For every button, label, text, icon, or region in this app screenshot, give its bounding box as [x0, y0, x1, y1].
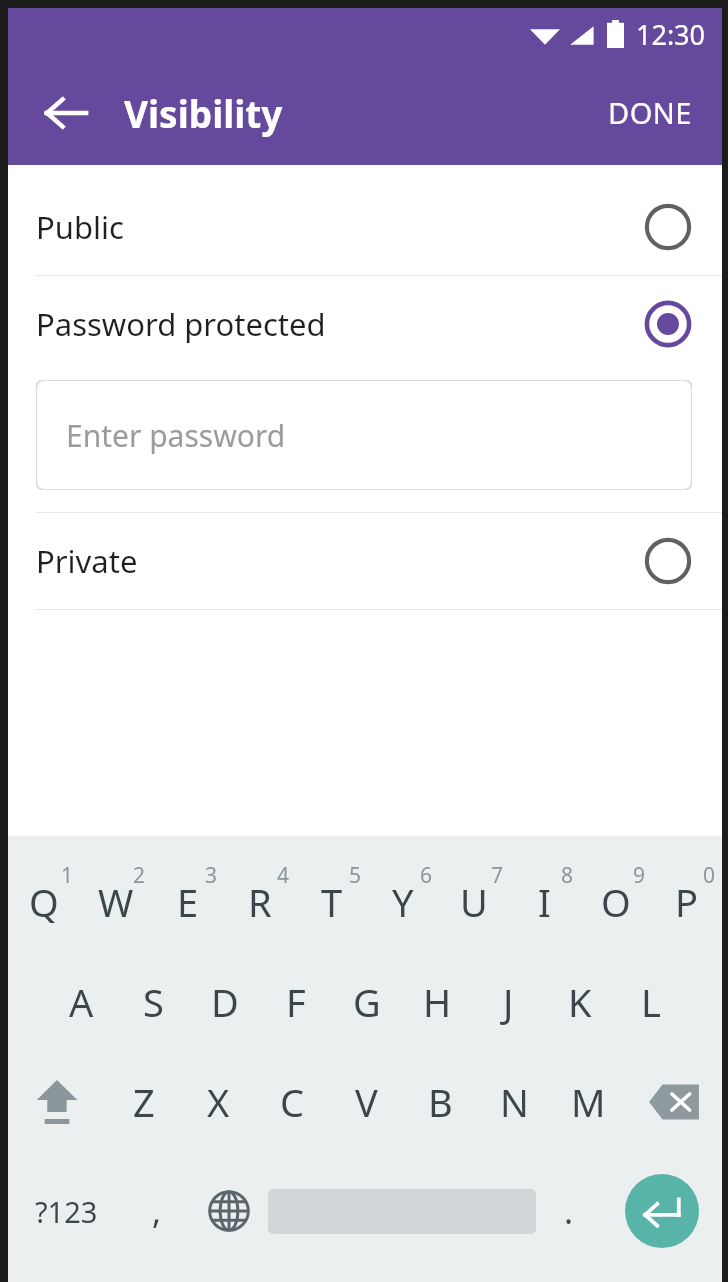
staticText: Y: [392, 876, 414, 928]
button[interactable]: E: [152, 852, 224, 952]
staticText: T: [321, 876, 343, 928]
button[interactable]: Q: [8, 852, 80, 952]
button[interactable]: Public: [8, 179, 722, 275]
button[interactable]: L: [615, 952, 686, 1052]
button[interactable]: B: [403, 1052, 477, 1152]
button[interactable]: Y: [367, 852, 438, 952]
button[interactable]: S: [117, 952, 189, 1052]
staticText: N: [500, 1076, 529, 1128]
staticText: B: [428, 1076, 453, 1128]
staticText: Q: [29, 876, 59, 928]
staticText: 12:30: [636, 16, 706, 53]
staticText: Enter password: [66, 415, 286, 456]
button[interactable]: T: [296, 852, 367, 952]
button[interactable]: R: [224, 852, 296, 952]
staticText: 6: [420, 861, 433, 890]
staticText: F: [286, 976, 306, 1028]
staticText: 8: [561, 861, 574, 890]
button[interactable]: X: [181, 1052, 255, 1152]
button[interactable]: ?123: [8, 1152, 124, 1270]
staticText: 5: [349, 861, 362, 890]
staticText: P: [675, 876, 698, 928]
staticText: C: [280, 1076, 305, 1128]
button[interactable]: Private: [8, 513, 722, 609]
staticText: 9: [633, 861, 646, 890]
button[interactable]: K: [544, 952, 615, 1052]
staticText: S: [143, 976, 164, 1028]
button[interactable]: Backspace: [625, 1052, 722, 1152]
button[interactable]: I: [509, 852, 580, 952]
staticText: V: [355, 1076, 378, 1128]
button[interactable]: U: [438, 852, 509, 952]
button[interactable]: [268, 1152, 536, 1270]
staticText: Password protected: [36, 303, 326, 345]
staticText: .: [564, 1188, 574, 1234]
button[interactable]: DONE: [586, 75, 714, 150]
staticText: ,: [152, 1188, 162, 1234]
staticText: M: [571, 1076, 606, 1128]
staticText: 3: [205, 861, 218, 890]
staticText: DONE: [608, 93, 692, 132]
button[interactable]: Shift: [8, 1052, 106, 1152]
button[interactable]: P: [651, 852, 722, 952]
staticText: 4: [277, 861, 290, 890]
button[interactable]: M: [551, 1052, 625, 1152]
staticText: A: [69, 976, 94, 1028]
button[interactable]: Password protected: [8, 276, 722, 372]
staticText: O: [601, 876, 631, 928]
staticText: J: [503, 976, 514, 1028]
button[interactable]: G: [331, 952, 402, 1052]
button[interactable]: .: [536, 1152, 602, 1270]
button[interactable]: C: [255, 1052, 329, 1152]
staticText: Z: [133, 1076, 155, 1128]
button[interactable]: V: [329, 1052, 403, 1152]
button[interactable]: D: [189, 952, 260, 1052]
staticText: Visibility: [124, 88, 283, 138]
button[interactable]: H: [402, 952, 473, 1052]
button[interactable]: Back: [32, 79, 100, 147]
button[interactable]: Enter password: [36, 380, 692, 490]
button[interactable]: N: [477, 1052, 551, 1152]
button[interactable]: Z: [106, 1052, 181, 1152]
button[interactable]: ,: [124, 1152, 190, 1270]
staticText: W: [98, 876, 134, 928]
button[interactable]: J: [473, 952, 544, 1052]
staticText: L: [641, 976, 661, 1028]
staticText: 7: [491, 861, 504, 890]
button[interactable]: Enter: [602, 1152, 722, 1270]
button[interactable]: A: [45, 952, 117, 1052]
staticText: E: [177, 876, 199, 928]
staticText: K: [568, 976, 592, 1028]
staticText: Public: [36, 206, 124, 248]
staticText: R: [248, 876, 272, 928]
staticText: I: [538, 876, 551, 928]
staticText: Private: [36, 540, 138, 582]
staticText: 1: [61, 861, 74, 890]
button[interactable]: F: [260, 952, 331, 1052]
staticText: ?123: [35, 1192, 98, 1231]
staticText: U: [460, 876, 488, 928]
button[interactable]: W: [80, 852, 152, 952]
staticText: D: [211, 976, 239, 1028]
staticText: G: [353, 976, 381, 1028]
staticText: X: [207, 1076, 230, 1128]
staticText: 2: [133, 861, 146, 890]
staticText: 0: [703, 861, 716, 890]
staticText: H: [423, 976, 452, 1028]
button[interactable]: Change language: [190, 1152, 268, 1270]
button[interactable]: O: [580, 852, 651, 952]
